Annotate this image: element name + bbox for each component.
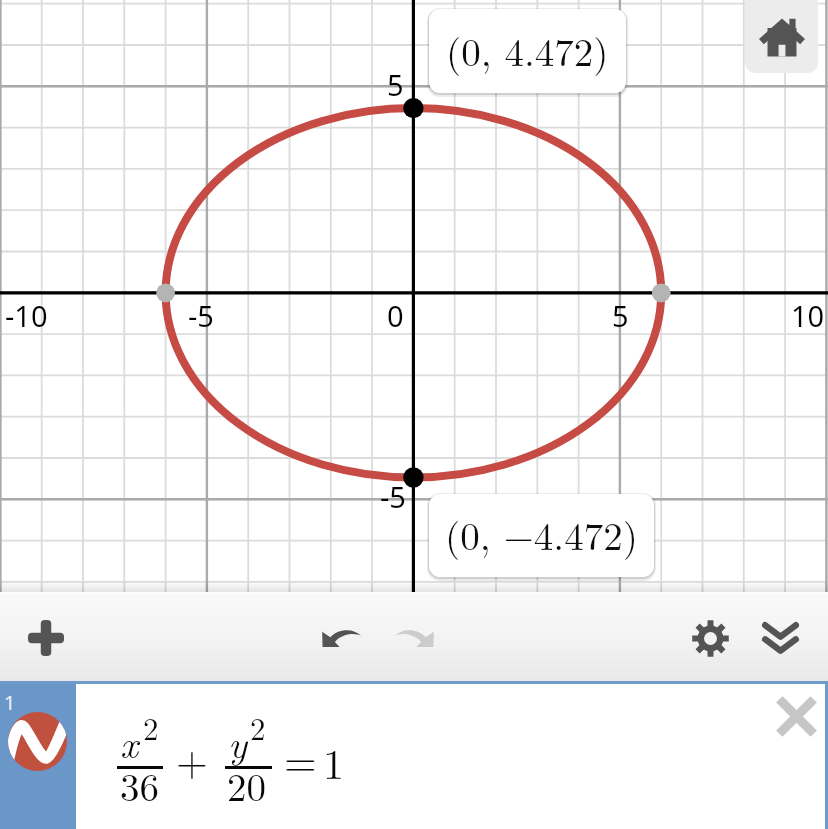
staticText: 36	[120, 757, 160, 812]
staticText: 0	[387, 296, 404, 335]
staticText: =	[284, 729, 317, 789]
staticText: 10	[791, 296, 825, 335]
staticText: 1	[4, 689, 16, 716]
staticText: 20	[227, 757, 267, 812]
button[interactable]: Add expression	[10, 602, 82, 674]
staticText: -5	[188, 296, 214, 335]
button[interactable]: (0, 4.472)	[429, 9, 626, 93]
staticText: 5	[387, 65, 404, 104]
staticText: x	[120, 714, 139, 769]
button[interactable]: Home	[745, 0, 818, 73]
staticText: (0, −4.472)	[445, 506, 638, 561]
staticText: y	[228, 714, 247, 769]
staticText: 1	[323, 732, 345, 792]
button[interactable]: Settings	[674, 602, 746, 674]
staticText: 2	[143, 705, 159, 749]
button[interactable]: (0, −4.472)	[429, 494, 654, 577]
staticText: 2	[250, 705, 266, 749]
button[interactable]: Delete expression	[768, 684, 824, 748]
button[interactable]: Collapse	[744, 602, 816, 674]
staticText: 5	[612, 296, 629, 335]
staticText: -10	[5, 296, 48, 335]
staticText: +	[176, 730, 208, 788]
staticText: (0, 4.472)	[446, 22, 609, 77]
button[interactable]: Toggle graph visibility, expression 1	[0, 684, 76, 829]
button[interactable]: Redo	[378, 602, 450, 674]
button[interactable]: Undo	[305, 602, 377, 674]
staticText: -5	[380, 477, 406, 516]
